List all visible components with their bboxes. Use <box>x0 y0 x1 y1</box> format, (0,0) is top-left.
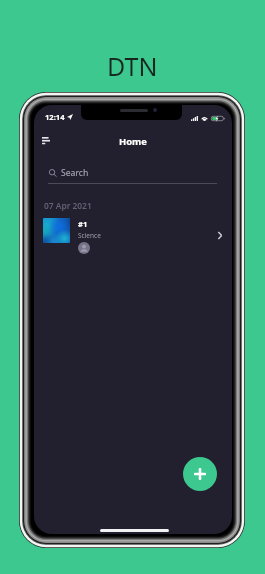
button[interactable]: Menu <box>37 132 55 148</box>
staticText: #1 <box>78 219 88 229</box>
staticText: Science <box>78 231 101 240</box>
staticText: Home <box>119 135 147 148</box>
button[interactable]: Add <box>183 457 217 491</box>
staticText: 07 Apr 2021 <box>44 200 92 211</box>
staticText: Search <box>61 167 89 179</box>
staticText: DTN <box>107 49 158 83</box>
button[interactable]: #1 <box>39 213 227 259</box>
staticText: 12:14 <box>45 112 65 122</box>
button[interactable]: Search <box>46 163 219 187</box>
